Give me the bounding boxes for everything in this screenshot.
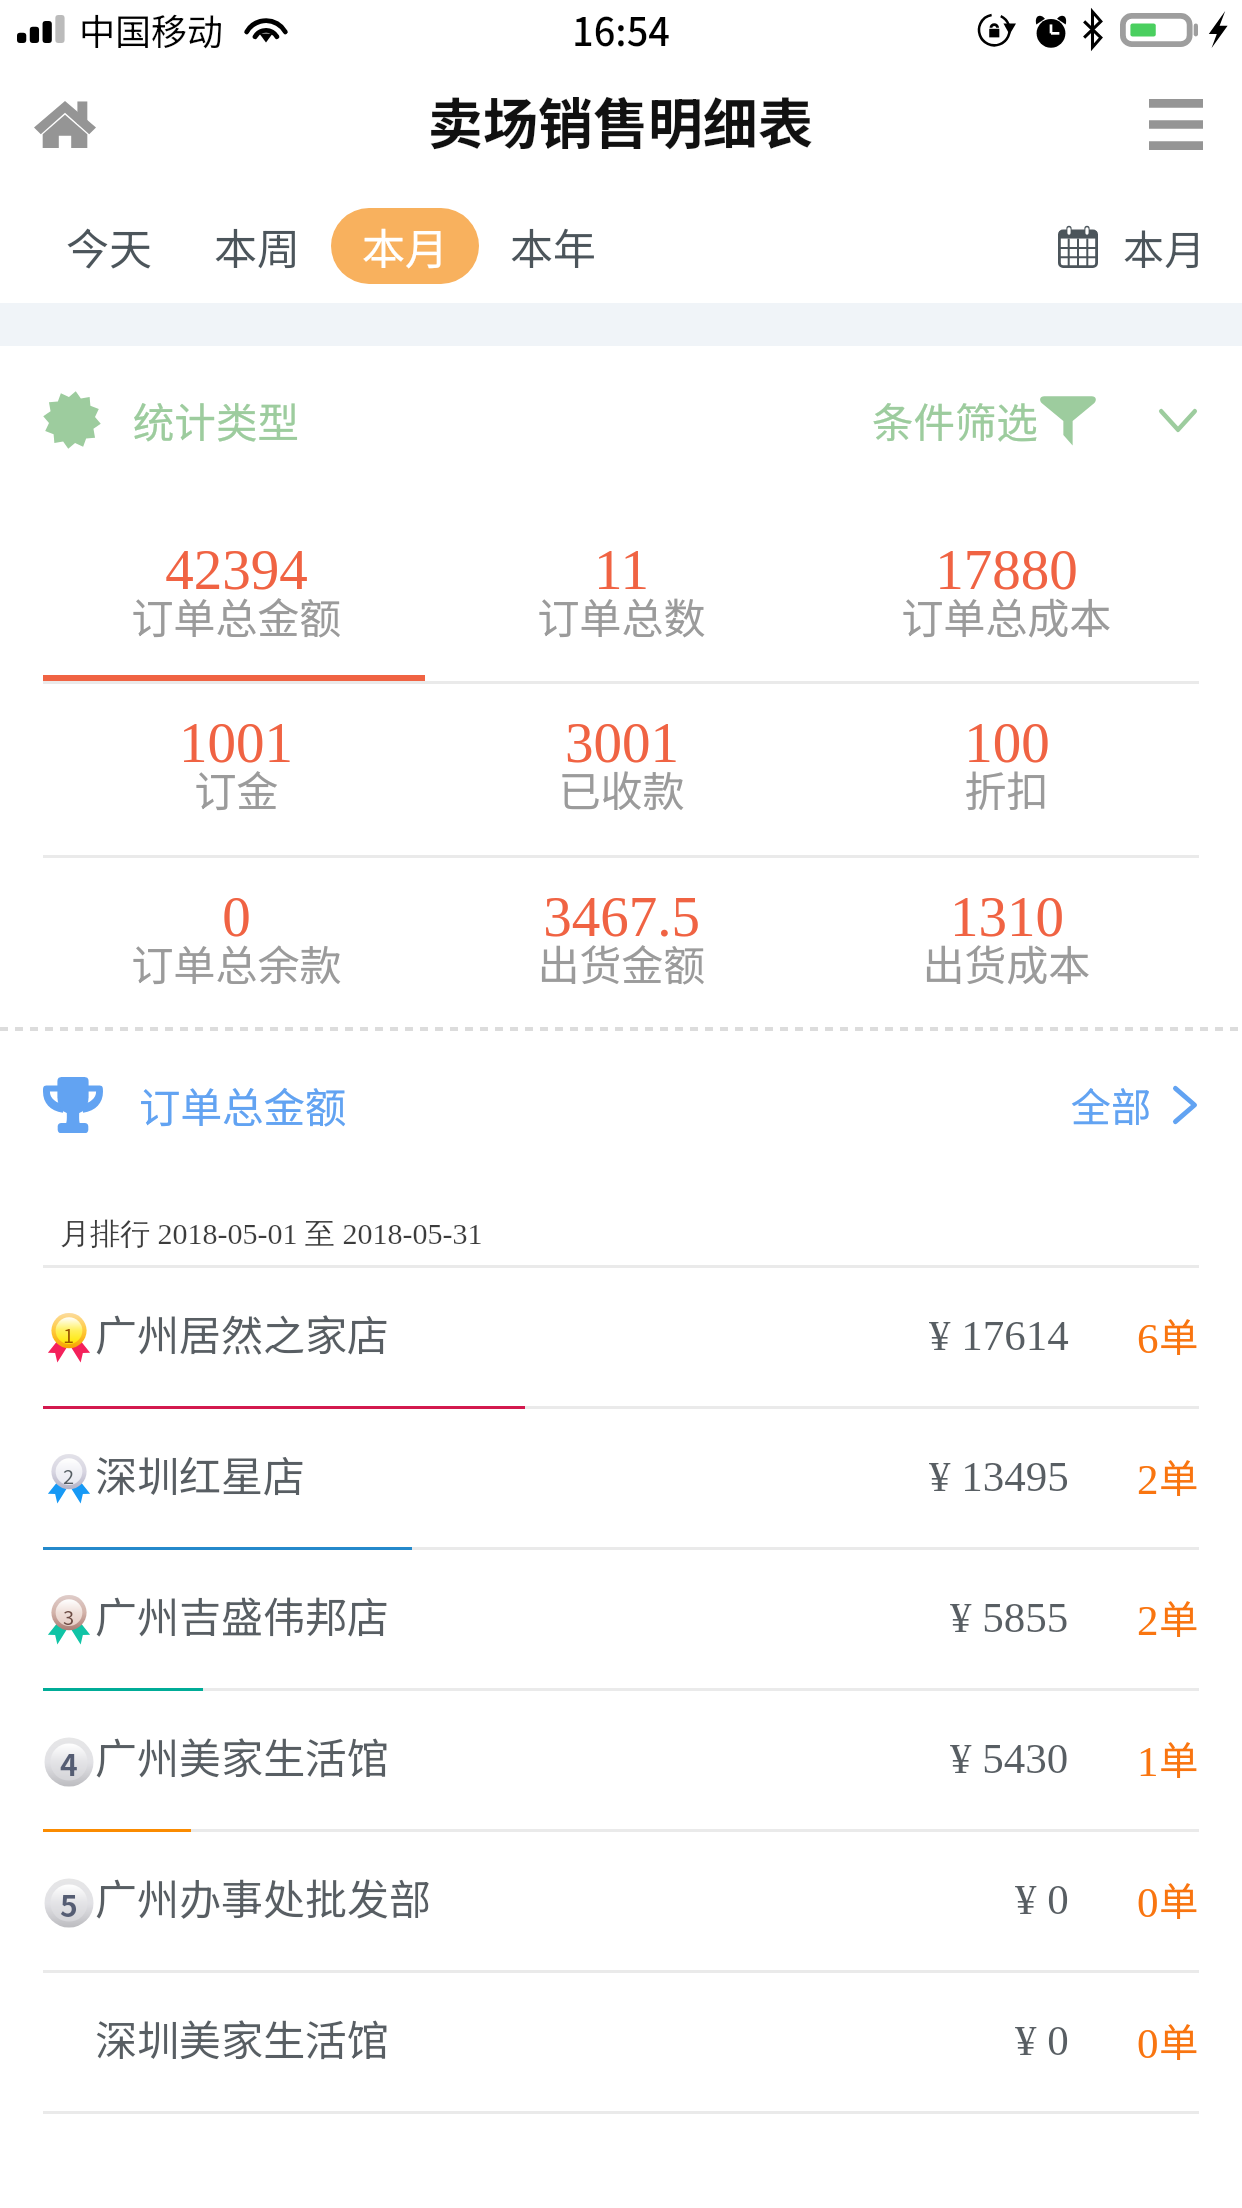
staticText: ¥ 13495 [929,1453,1069,1501]
staticText: 卖场销售明细表 [428,80,814,160]
button[interactable]: 本周 [183,208,331,284]
staticText: 订单总数 [537,585,706,646]
staticText: 订单总余款 [131,932,342,993]
staticText: 6 [1137,1315,1159,1363]
staticText: ¥ 0 [1015,1876,1069,1924]
staticText: 3001 [565,711,679,774]
staticText: 100 [964,711,1050,774]
staticText: 单 [1159,2012,1199,2068]
staticText: 单 [1159,1871,1199,1927]
staticText: 本月 [362,215,448,277]
staticText: 2 [1137,1456,1159,1504]
staticText: ¥ 0 [1015,2017,1069,2065]
button[interactable]: 1 [0,1268,1242,1409]
staticText: ¥ 5855 [950,1594,1069,1642]
staticText: 本年 [510,215,596,277]
button[interactable]: 本年 [479,208,627,284]
staticText: 2 [1137,1597,1159,1645]
staticText: ¥ 5430 [950,1735,1069,1783]
staticText: 0 [1137,2020,1159,2068]
staticText: 1 [1137,1738,1159,1786]
button[interactable]: 今天 [35,208,183,284]
button[interactable]: 17880 [814,538,1199,662]
button[interactable]: 0 [43,885,429,1009]
staticText: 本周 [214,215,300,277]
button[interactable]: 3467.5 [429,885,814,1009]
staticText: 深圳红星店 [95,1443,306,1504]
staticText: 本月 [1123,217,1205,276]
button[interactable]: 3001 [429,711,814,835]
button[interactable]: 全部 [1071,1076,1197,1134]
staticText: 0 [1137,1879,1159,1927]
button[interactable]: Home [14,81,116,167]
staticText: 1310 [950,885,1064,948]
staticText: 42394 [165,538,308,601]
button[interactable]: 42394 [43,538,429,662]
button[interactable]: 统计类型 [43,390,300,450]
staticText: 4 [60,1741,78,1784]
button[interactable]: 5 [0,1832,1242,1973]
staticText: 1 [63,1320,75,1349]
staticText: ¥ 17614 [929,1312,1069,1360]
staticText: 广州办事处批发部 [95,1866,432,1927]
staticText: 2 [63,1461,75,1490]
staticText: 单 [1159,1589,1199,1645]
button[interactable]: 本月 [1058,217,1205,276]
staticText: 已收款 [558,758,685,819]
staticText: 3467.5 [543,885,700,948]
button[interactable]: 4 [0,1691,1242,1832]
staticText: 广州吉盛伟邦店 [95,1584,390,1645]
staticText: 3 [63,1602,75,1631]
button[interactable]: 本月 [331,208,479,284]
staticText: 广州美家生活馆 [95,1725,390,1786]
staticText: 订单总成本 [901,585,1112,646]
staticText: 订单总金额 [139,1075,347,1135]
button[interactable]: 1310 [814,885,1199,1009]
staticText: 5 [60,1882,78,1925]
button[interactable]: 2 [0,1409,1242,1550]
staticText: 广州居然之家店 [95,1302,390,1363]
button[interactable]: 条件筛选 [872,390,1097,450]
staticText: 出货金额 [537,932,706,993]
staticText: 出货成本 [922,932,1091,993]
staticText: 单 [1159,1448,1199,1504]
button[interactable]: 3 [0,1550,1242,1691]
staticText: 月排行 2018-05-01 至 2018-05-31 [60,1215,483,1253]
staticText: 16:54 [572,2,670,57]
staticText: 订单总金额 [131,585,342,646]
staticText: 全部 [1071,1076,1151,1134]
staticText: 11 [594,538,649,601]
staticText: 17880 [935,538,1078,601]
button[interactable]: 深圳美家生活馆 [0,1973,1242,2114]
staticText: 折扣 [964,758,1049,819]
staticText: 0 [222,885,251,948]
staticText: 条件筛选 [872,390,1039,450]
button[interactable]: 100 [814,711,1199,835]
staticText: 深圳美家生活馆 [95,2007,390,2068]
staticText: 单 [1159,1730,1199,1786]
staticText: 订金 [194,758,279,819]
staticText: 今天 [66,215,152,277]
button[interactable]: Expand [1159,409,1197,432]
staticText: 统计类型 [133,390,300,450]
staticText: 中国移动 [79,3,224,55]
button[interactable]: 订单总金额 [43,1075,347,1135]
button[interactable]: 1001 [43,711,429,835]
staticText: 单 [1159,1307,1199,1363]
button[interactable]: Menu [1130,81,1222,167]
staticText: 1001 [179,711,293,774]
button[interactable]: 11 [429,538,814,662]
